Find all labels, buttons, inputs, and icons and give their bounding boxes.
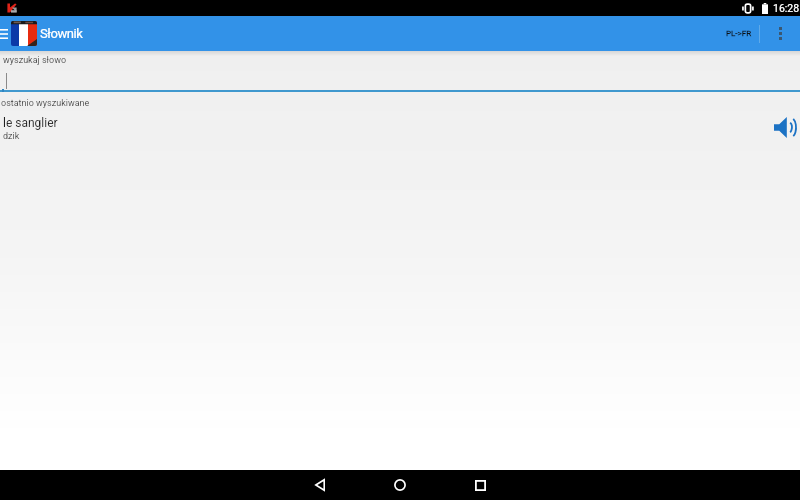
button[interactable]: le sanglier: [0, 116, 800, 141]
staticText: wyszukaj słowo: [3, 55, 67, 66]
button[interactable]: Change language: [11, 21, 37, 46]
button[interactable]: Search word input: [0, 68, 800, 90]
button[interactable]: PL->FR: [718, 16, 759, 51]
button[interactable]: Play pronunciation: [770, 116, 800, 141]
button[interactable]: Recent apps: [456, 470, 504, 500]
staticText: PL->FR: [726, 29, 752, 38]
staticText: Słownik: [40, 26, 83, 41]
staticText: 16:28: [773, 2, 800, 14]
button[interactable]: Back: [296, 470, 344, 500]
staticText: ostatnio wyszukiwane: [1, 98, 90, 109]
button[interactable]: Open navigation menu: [0, 16, 12, 51]
button[interactable]: More options: [760, 16, 800, 51]
button[interactable]: Home: [376, 470, 424, 500]
staticText: le sanglier: [3, 116, 58, 130]
staticText: dzik: [3, 131, 20, 142]
